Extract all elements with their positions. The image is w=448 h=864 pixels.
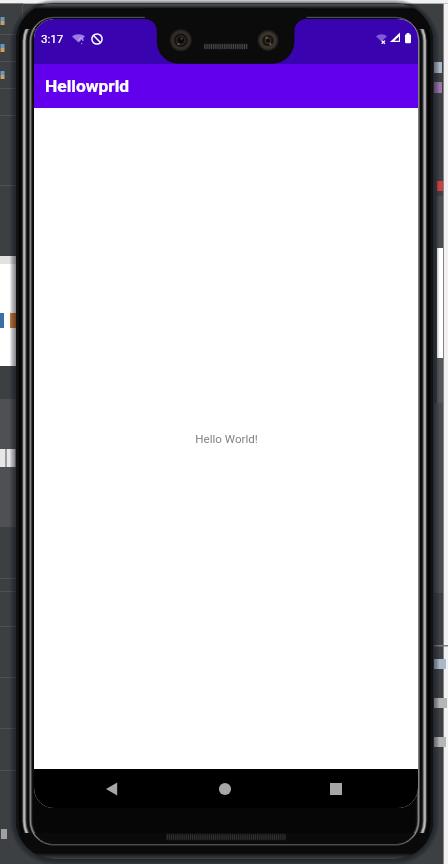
- button[interactable]: Back: [98, 775, 126, 803]
- staticText: Hellowprld: [45, 76, 130, 96]
- staticText: Hello World!: [195, 432, 258, 446]
- button[interactable]: Hellowprld: [34, 64, 418, 108]
- button[interactable]: Recent apps: [322, 775, 350, 803]
- button[interactable]: Home: [211, 775, 239, 803]
- staticText: 3:17: [41, 32, 64, 46]
